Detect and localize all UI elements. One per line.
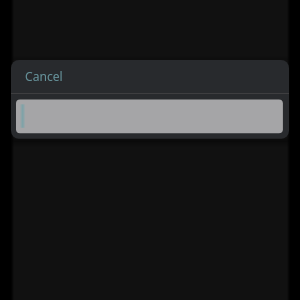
button[interactable]: [16, 100, 283, 134]
button[interactable]: Cancel: [11, 60, 289, 93]
staticText: Cancel: [25, 68, 63, 84]
